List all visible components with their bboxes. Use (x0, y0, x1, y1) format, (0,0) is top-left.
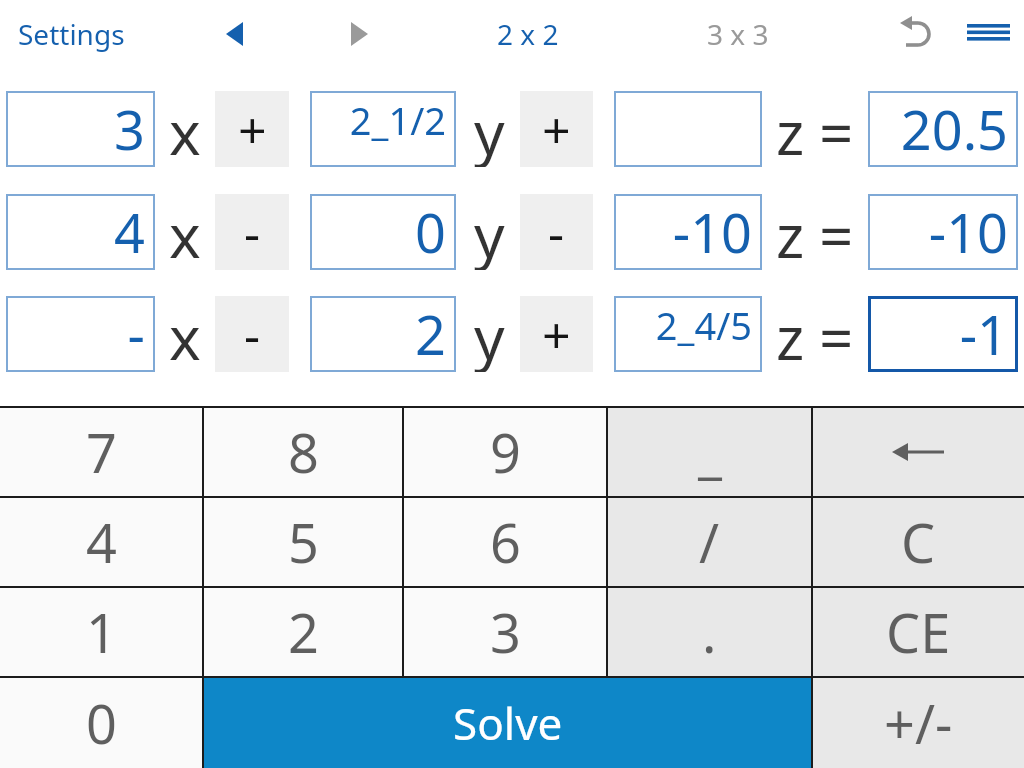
staticText: - (127, 297, 145, 371)
button[interactable]: Solve (203, 677, 812, 768)
staticText: Solve (453, 693, 563, 753)
staticText: CE (886, 595, 951, 669)
staticText: 2 (288, 595, 319, 669)
button[interactable]: 0 (0, 677, 203, 768)
button[interactable]: 9 (403, 407, 607, 497)
staticText: - (244, 198, 261, 266)
button[interactable]: 20.5 (868, 91, 1018, 167)
button[interactable]: _ (607, 407, 812, 497)
button[interactable]: 0 (310, 194, 456, 270)
staticText: 2_1/2 (349, 94, 446, 146)
staticText: -1 (959, 297, 1008, 371)
staticText: + (238, 95, 267, 163)
button[interactable] (960, 16, 1014, 50)
staticText: 2 x 2 (497, 15, 559, 53)
button[interactable]: + (520, 296, 593, 372)
button[interactable]: 2 (310, 296, 456, 372)
button[interactable]: 2_1/2 (310, 91, 456, 167)
staticText: 6 (490, 505, 521, 579)
button[interactable]: -10 (614, 194, 762, 270)
button[interactable]: C (812, 497, 1024, 587)
staticText: - (548, 198, 565, 266)
button[interactable] (812, 407, 1024, 497)
button[interactable]: + (215, 91, 289, 167)
staticText: 9 (490, 415, 521, 489)
button[interactable]: 3 (403, 587, 607, 677)
button[interactable]: -10 (868, 194, 1018, 270)
button[interactable]: 4 (0, 497, 203, 587)
button[interactable] (614, 91, 762, 167)
staticText: Settings (18, 15, 125, 53)
staticText: +/- (884, 686, 953, 760)
staticText: 3 x 3 (707, 15, 769, 53)
staticText: 0 (415, 195, 446, 269)
staticText: = (819, 194, 854, 270)
staticText: z (776, 91, 805, 167)
staticText: 7 (86, 415, 117, 489)
button[interactable]: 2_4/5 (614, 296, 762, 372)
staticText: C (901, 505, 936, 579)
staticText: x (169, 194, 201, 270)
staticText: y (474, 194, 505, 270)
staticText: 4 (86, 505, 117, 579)
button[interactable]: 1 (0, 587, 203, 677)
button[interactable]: 3 (6, 91, 155, 167)
staticText: -10 (928, 195, 1008, 269)
staticText: + (542, 95, 571, 163)
staticText: x (169, 296, 201, 372)
button[interactable]: 8 (203, 407, 403, 497)
button[interactable]: / (607, 497, 812, 587)
button[interactable]: - (520, 194, 593, 270)
staticText: + (542, 300, 571, 368)
staticText: y (474, 91, 505, 167)
staticText: / (699, 505, 720, 579)
button[interactable] (336, 12, 380, 56)
staticText: 2 (415, 297, 446, 371)
staticText: 4 (114, 195, 145, 269)
staticText: z (776, 194, 805, 270)
staticText: 20.5 (900, 92, 1008, 166)
staticText: 3 (490, 595, 521, 669)
staticText: 3 (114, 92, 145, 166)
staticText: 0 (86, 686, 117, 760)
staticText: = (819, 296, 854, 372)
staticText: -10 (672, 195, 752, 269)
button[interactable]: 3 x 3 (690, 14, 785, 54)
staticText: z (776, 296, 805, 372)
staticText: 1 (86, 595, 117, 669)
staticText: 2_4/5 (655, 299, 752, 351)
button[interactable]: 5 (203, 497, 403, 587)
button[interactable] (896, 12, 940, 54)
staticText: - (244, 300, 261, 368)
button[interactable]: 2 x 2 (480, 14, 575, 54)
button[interactable]: - (215, 194, 289, 270)
staticText: 5 (288, 505, 319, 579)
staticText: _ (698, 415, 722, 489)
button[interactable]: 4 (6, 194, 155, 270)
button[interactable]: + (520, 91, 593, 167)
staticText: y (474, 296, 505, 372)
button[interactable]: -1 (868, 296, 1018, 372)
staticText: x (169, 91, 201, 167)
staticText: = (819, 91, 854, 167)
staticText: 8 (288, 415, 319, 489)
button[interactable]: - (215, 296, 289, 372)
staticText: . (702, 595, 717, 669)
button[interactable]: - (6, 296, 155, 372)
button[interactable]: CE (812, 587, 1024, 677)
button[interactable]: Settings (10, 14, 130, 54)
button[interactable]: 2 (203, 587, 403, 677)
button[interactable]: . (607, 587, 812, 677)
button[interactable]: +/- (812, 677, 1024, 768)
button[interactable] (210, 12, 254, 56)
button[interactable]: 6 (403, 497, 607, 587)
button[interactable]: 7 (0, 407, 203, 497)
